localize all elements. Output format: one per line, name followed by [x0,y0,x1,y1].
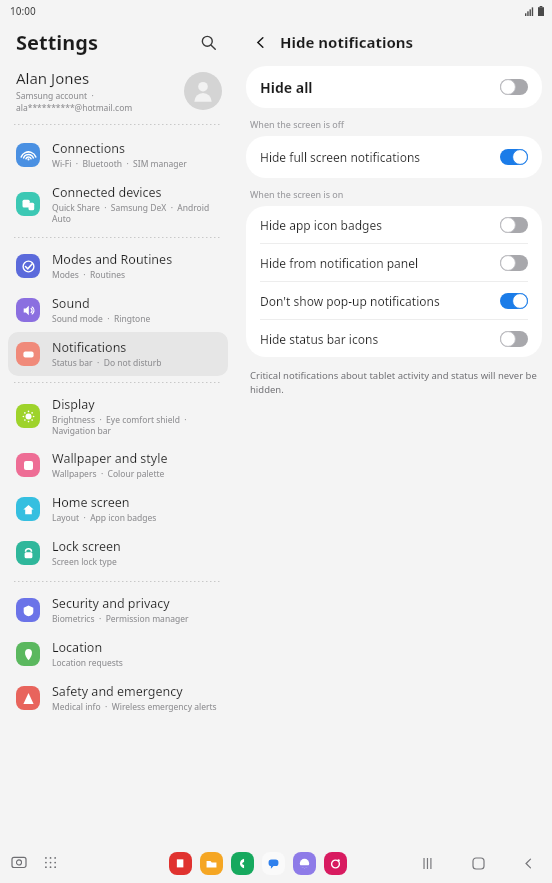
staticText: Location requests [52,657,123,669]
staticText: Medical info · Wireless emergency alerts [52,701,217,713]
staticText: Modes and Routines [52,251,173,268]
button[interactable]: Alan Jones [0,62,236,120]
button[interactable]: On [500,149,528,165]
button[interactable]: files [200,852,223,875]
button[interactable]: Home screen [8,487,228,531]
button[interactable]: Hide full screen notifications [246,136,542,178]
button[interactable]: Back [246,28,274,56]
staticText: Hide from notification panel [260,255,500,271]
button[interactable]: Wallpaper and style [8,443,228,487]
staticText: Hide notifications [280,32,414,52]
staticText: Settings [16,29,98,56]
staticText: When the screen is off [250,118,344,130]
staticText: Brightness · Eye comfort shield · Naviga… [52,414,220,436]
button[interactable]: Safety and emergency [8,676,228,720]
button[interactable]: Back [514,849,542,877]
button[interactable]: Connections [8,133,228,177]
staticText: Location [52,639,103,656]
staticText: Hide status bar icons [260,331,500,347]
staticText: Biometrics · Permission manager [52,613,189,625]
button[interactable]: camera [324,852,347,875]
button[interactable]: Location [8,632,228,676]
staticText: Critical notifications about tablet acti… [250,369,538,396]
button[interactable]: messages [262,852,285,875]
staticText: Sound mode · Ringtone [52,313,151,325]
staticText: Quick Share · Samsung DeX · Android Auto [52,202,220,224]
staticText: Security and privacy [52,595,170,612]
staticText: Alan Jones [16,68,90,88]
staticText: ala**********@hotmail.com [16,102,133,114]
button[interactable]: Off [500,255,528,271]
staticText: Safety and emergency [52,683,183,700]
button[interactable]: Search [192,26,224,58]
staticText: Modes · Routines [52,269,126,281]
button[interactable]: Hide from notification panel [246,244,542,281]
button[interactable]: Modes and Routines [8,244,228,288]
button[interactable]: On [500,293,528,309]
staticText: Sound [52,295,90,312]
staticText: Connected devices [52,184,162,201]
staticText: Home screen [52,494,130,511]
button[interactable]: Off [500,217,528,233]
button[interactable]: Sound [8,288,228,332]
button[interactable]: flipboard [169,852,192,875]
staticText: Connections [52,140,125,157]
button[interactable]: Off [500,331,528,347]
staticText: Samsung account · [16,90,94,102]
button[interactable]: Off [500,79,528,95]
staticText: Status bar · Do not disturb [52,357,162,369]
button[interactable]: Home [464,849,492,877]
button[interactable]: Hide status bar icons [246,320,542,357]
button[interactable]: phone [231,852,254,875]
staticText: Layout · App icon badges [52,512,157,524]
button[interactable]: Hide all [246,66,542,108]
staticText: Don't show pop-up notifications [260,293,500,309]
staticText: Hide all [260,78,500,97]
staticText: Wi-Fi · Bluetooth · SIM manager [52,158,187,170]
button[interactable]: Recent apps [6,850,32,876]
button[interactable]: Recents [414,849,442,877]
staticText: Lock screen [52,538,121,555]
staticText: Hide app icon badges [260,217,500,233]
button[interactable]: Hide app icon badges [246,206,542,243]
staticText: Display [52,396,95,413]
button[interactable]: Security and privacy [8,588,228,632]
staticText: 10:00 [10,4,36,18]
staticText: Screen lock type [52,556,117,568]
button[interactable]: internet [293,852,316,875]
staticText: Wallpapers · Colour palette [52,468,165,480]
staticText: When the screen is on [250,188,344,200]
button[interactable]: All apps [38,850,64,876]
staticText: Notifications [52,339,127,356]
staticText: Hide full screen notifications [260,149,500,165]
button[interactable]: Don't show pop-up notifications [246,282,542,319]
button[interactable]: Notifications [8,332,228,376]
button[interactable]: Connected devices [8,177,228,231]
staticText: Wallpaper and style [52,450,168,467]
button[interactable]: Lock screen [8,531,228,575]
button[interactable]: Display [8,389,228,443]
